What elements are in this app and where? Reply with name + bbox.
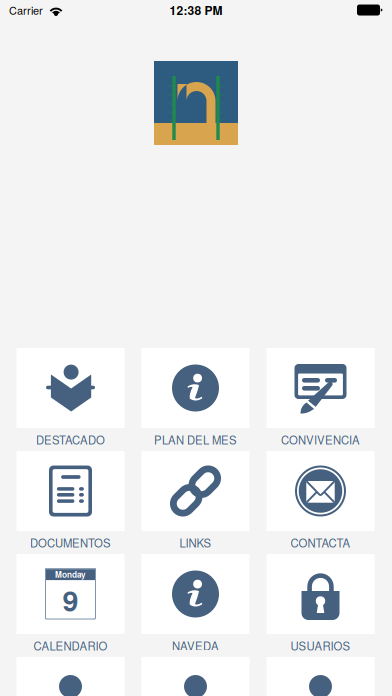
staticText: Monday [55,568,86,580]
staticText: CONTACTA [290,534,350,551]
button[interactable]: DESTACADO [16,348,124,451]
staticText: PLAN DEL MES [154,431,237,448]
staticText: NAVEDA [172,637,219,654]
button[interactable]: CONTACTA [266,451,374,554]
button[interactable]: DOCUMENTOS [16,451,124,554]
staticText: DESTACADO [36,431,105,448]
staticText: DOCUMENTOS [30,534,111,551]
staticText: LINKS [179,534,211,551]
button[interactable]: NAVEDA [141,554,249,657]
staticText: CONVIVENCIA [281,431,360,448]
staticText: 12:38 PM [169,1,222,19]
button[interactable]: CONVIVENCIA [266,348,374,451]
staticText: CALENDARIO [33,637,107,654]
button[interactable]: ALUMNOS [16,657,124,696]
button[interactable]: USUARIOS [266,554,374,657]
button[interactable]: FAMILIAS [266,657,374,696]
button[interactable]: Monday [16,554,124,657]
button[interactable]: PLAN DEL MES [141,348,249,451]
button[interactable]: LINKS [141,451,249,554]
staticText: Carrier [9,2,43,18]
staticText: 9 [62,579,78,620]
staticText: USUARIOS [290,637,350,654]
button[interactable]: PROFESORES [141,657,249,696]
